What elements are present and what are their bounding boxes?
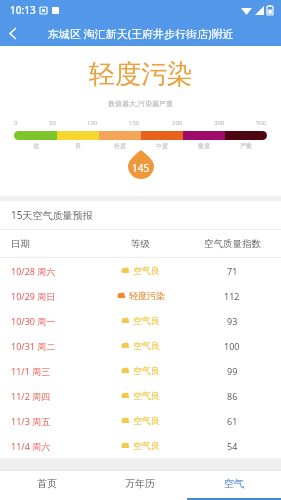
button[interactable]: 首页 xyxy=(0,470,93,500)
staticText: 10/29 周日 xyxy=(11,290,56,302)
staticText: 空气良 xyxy=(133,315,160,326)
staticText: 日期 xyxy=(11,238,30,250)
staticText: 11/3 周五 xyxy=(11,415,51,427)
staticText: 中度 xyxy=(156,142,168,150)
staticText: 50 xyxy=(49,119,56,127)
button[interactable]: Back xyxy=(0,20,26,46)
staticText: 重度 xyxy=(198,142,210,150)
staticText: 300 xyxy=(214,119,225,127)
button[interactable]: 11/2 周四 xyxy=(0,383,281,408)
staticText: 空气良 xyxy=(133,415,160,426)
staticText: 万年历 xyxy=(125,477,155,490)
button[interactable]: 10/29 周日 xyxy=(0,283,281,308)
staticText: 145 xyxy=(132,161,150,175)
staticText: 86 xyxy=(227,390,238,402)
staticText: 空气良 xyxy=(133,365,160,376)
staticText: 100 xyxy=(87,119,98,127)
staticText: 10/30 周一 xyxy=(11,315,56,327)
staticText: 61 xyxy=(227,415,238,427)
staticText: 优 xyxy=(33,142,39,150)
staticText: 0 xyxy=(14,119,18,127)
button[interactable]: 空气 xyxy=(187,470,281,500)
button[interactable]: 10/31 周二 xyxy=(0,333,281,358)
staticText: 空气 xyxy=(224,477,244,490)
staticText: 轻度污染 xyxy=(129,290,165,301)
staticText: 112 xyxy=(224,290,240,302)
staticText: 500 xyxy=(256,119,267,127)
staticText: 15天空气质量预报 xyxy=(11,208,93,222)
button[interactable]: 10/28 周六 xyxy=(0,258,281,283)
staticText: 空气良 xyxy=(133,440,160,451)
staticText: 200 xyxy=(172,119,183,127)
button[interactable]: 10/30 周一 xyxy=(0,308,281,333)
staticText: 首页 xyxy=(37,477,57,490)
staticText: 10/31 周二 xyxy=(11,340,56,352)
button[interactable]: 万年历 xyxy=(93,470,187,500)
staticText: 10:13 xyxy=(10,3,36,17)
staticText: 等级 xyxy=(131,238,150,250)
staticText: 空气良 xyxy=(133,265,160,276)
staticText: 轻度 xyxy=(114,142,126,150)
staticText: 11/4 周六 xyxy=(11,440,51,452)
staticText: 空气质量指数 xyxy=(204,238,261,250)
button[interactable]: 11/4 周六 xyxy=(0,433,281,458)
staticText: 93 xyxy=(227,315,238,327)
staticText: 东城区 淘汇新天(王府井步行街店)附近 xyxy=(48,26,234,41)
staticText: 54 xyxy=(227,440,238,452)
staticText: 10/28 周六 xyxy=(11,265,56,277)
staticText: 99 xyxy=(227,365,238,377)
staticText: 11/2 周四 xyxy=(11,390,51,402)
staticText: 150 xyxy=(129,119,140,127)
staticText: 严重 xyxy=(240,142,252,150)
button[interactable]: 11/3 周五 xyxy=(0,408,281,433)
staticText: 数值越大,污染越严重 xyxy=(108,99,173,109)
staticText: 良 xyxy=(75,142,81,150)
staticText: 空气良 xyxy=(133,390,160,401)
staticText: 轻度污染 xyxy=(89,58,193,91)
staticText: 11/1 周三 xyxy=(11,365,51,377)
staticText: 100 xyxy=(224,340,240,352)
staticText: 71 xyxy=(227,265,238,277)
staticText: 空气良 xyxy=(133,340,160,351)
button[interactable]: 11/1 周三 xyxy=(0,358,281,383)
